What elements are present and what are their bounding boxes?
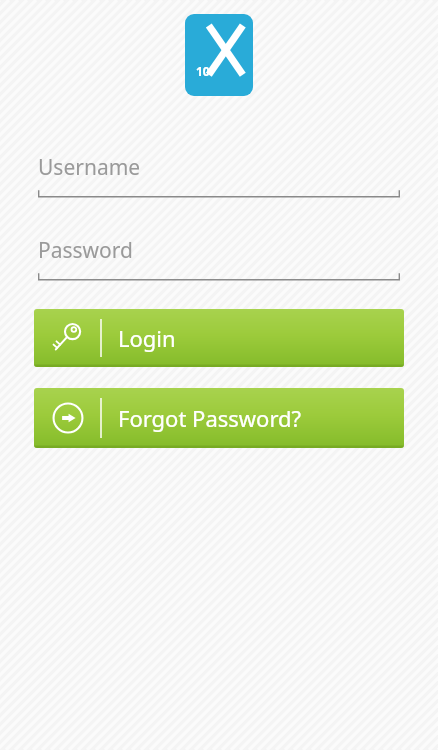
staticText: Login xyxy=(118,323,176,353)
staticText: Password xyxy=(38,236,133,265)
other: App logo xyxy=(185,14,253,96)
button[interactable]: Forgot Password? xyxy=(34,388,404,448)
button[interactable]: Username xyxy=(38,153,400,198)
staticText: Forgot Password? xyxy=(118,403,302,433)
staticText: Username xyxy=(38,153,141,182)
button[interactable]: Login xyxy=(34,309,404,367)
staticText: 10 xyxy=(196,63,210,79)
button[interactable]: Password xyxy=(38,236,400,281)
